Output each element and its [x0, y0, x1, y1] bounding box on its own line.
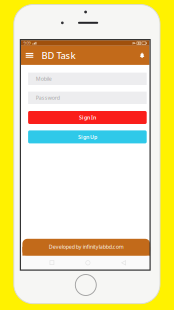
- button[interactable]: Sign In: [28, 111, 147, 124]
- button[interactable]: Back: [118, 257, 129, 268]
- staticText: Developed by infinitylabbd.com: [49, 243, 124, 250]
- staticText: Mobile: [36, 75, 52, 82]
- staticText: Password: [36, 94, 60, 101]
- staticText: Sign In: [79, 114, 96, 121]
- button[interactable]: Sign Up: [28, 130, 147, 143]
- staticText: Sign Up: [78, 133, 97, 140]
- staticText: BD Task: [41, 49, 75, 62]
- button[interactable]: Notifications: [135, 46, 149, 65]
- button[interactable]: Home: [82, 257, 93, 268]
- staticText: 9:09: [24, 40, 31, 46]
- button[interactable]: Recents: [46, 257, 57, 268]
- button[interactable]: Menu: [21, 46, 38, 65]
